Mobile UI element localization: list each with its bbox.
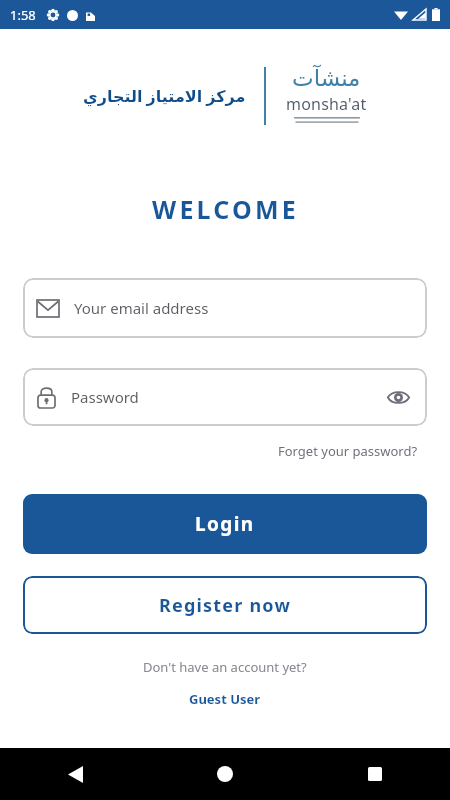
button[interactable]: Guest User bbox=[181, 688, 269, 710]
staticText: Guest User bbox=[189, 690, 261, 708]
staticText: Register now bbox=[159, 593, 292, 618]
button[interactable]: Show password bbox=[383, 382, 413, 412]
button[interactable]: Recent apps bbox=[300, 748, 450, 800]
button[interactable]: Forget your password? bbox=[274, 438, 422, 464]
staticText: monsha'at bbox=[286, 93, 367, 115]
button[interactable]: Password bbox=[23, 368, 427, 426]
staticText: Your email address bbox=[74, 298, 209, 318]
button[interactable]: Register now bbox=[23, 576, 427, 634]
staticText: 1:58 bbox=[10, 6, 36, 24]
button[interactable]: Back bbox=[0, 748, 150, 800]
button[interactable]: Login bbox=[23, 494, 427, 554]
button[interactable]: Home bbox=[150, 748, 300, 800]
staticText: Password bbox=[71, 387, 139, 407]
staticText: Forget your password? bbox=[278, 442, 418, 460]
button[interactable]: Your email address bbox=[23, 278, 427, 338]
staticText: Login bbox=[195, 511, 255, 537]
staticText: WELCOME bbox=[152, 192, 299, 226]
staticText: منشآت bbox=[292, 65, 361, 92]
staticText: مركز الامتياز التجاري bbox=[83, 85, 246, 107]
staticText: Don't have an account yet? bbox=[143, 658, 307, 676]
